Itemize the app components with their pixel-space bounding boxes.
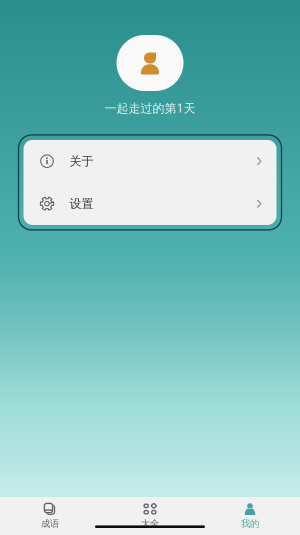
- staticText: 大全: [141, 518, 159, 529]
- button[interactable]: 我的: [200, 497, 300, 535]
- staticText: 成语: [41, 518, 59, 529]
- staticText: 一起走过的第1天: [104, 100, 195, 116]
- button[interactable]: 大全: [100, 497, 200, 535]
- button[interactable]: 成语: [0, 497, 100, 535]
- button[interactable]: 设置: [23, 182, 276, 225]
- staticText: 关于: [69, 154, 93, 168]
- staticText: 我的: [241, 518, 259, 529]
- button[interactable]: 关于: [23, 140, 276, 182]
- staticText: 设置: [69, 196, 93, 211]
